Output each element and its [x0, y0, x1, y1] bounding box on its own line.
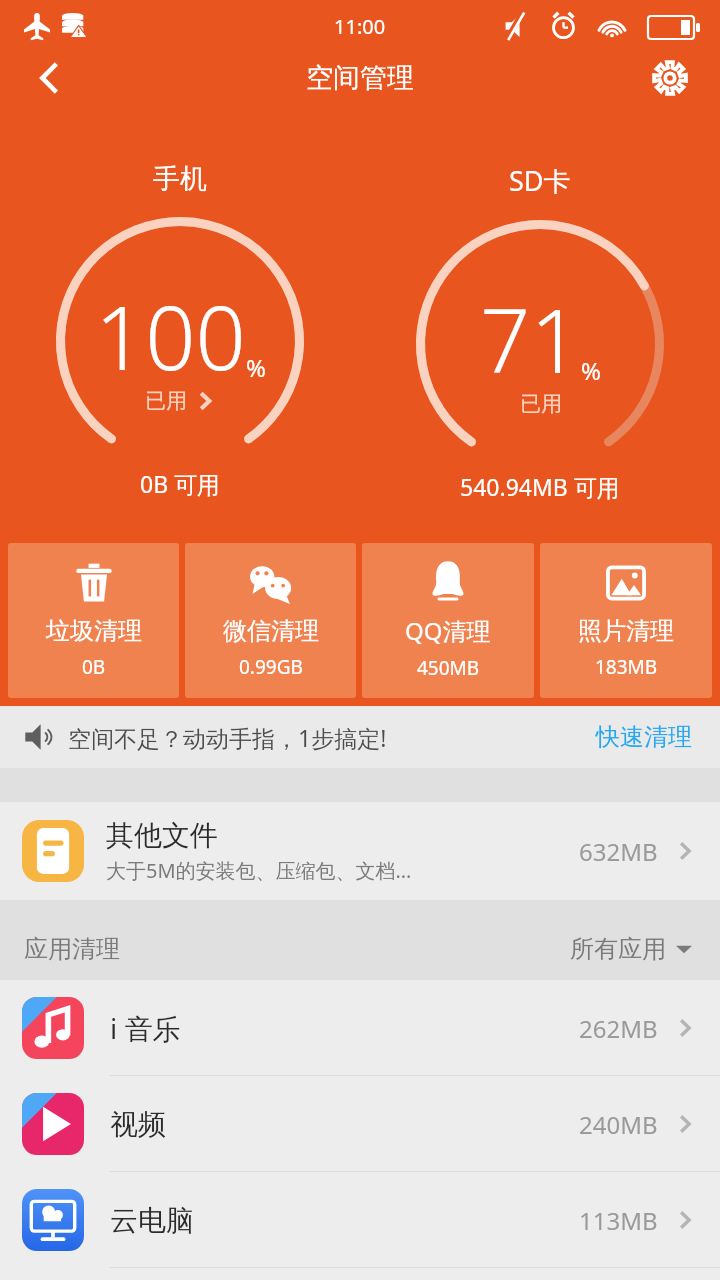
staticText: 0B: [82, 654, 106, 680]
staticText: 0B 可用: [140, 468, 221, 499]
staticText: 240MB: [579, 1108, 658, 1141]
staticText: 其他文件: [106, 818, 218, 853]
button[interactable]: 云电脑: [0, 1172, 720, 1268]
button[interactable]: QQ清理: [362, 543, 534, 698]
staticText: 已用: [145, 388, 187, 414]
staticText: 已用: [520, 391, 562, 417]
staticText: 云电脑: [110, 1203, 194, 1238]
staticText: 540.94MB 可用: [460, 471, 620, 502]
button[interactable]: 快速清理: [592, 718, 696, 756]
staticText: %: [581, 354, 601, 387]
button[interactable]: 照片清理: [540, 543, 712, 698]
staticText: 大于5M的安装包、压缩包、文档…: [106, 857, 412, 884]
staticText: 微信清理: [223, 616, 319, 646]
button[interactable]: 其他文件: [0, 802, 720, 900]
staticText: SD卡: [509, 162, 571, 199]
button[interactable]: 微信清理: [185, 543, 356, 698]
button[interactable]: 已用: [520, 391, 562, 417]
button[interactable]: Back: [12, 50, 88, 106]
staticText: 垃圾清理: [46, 616, 142, 646]
staticText: 空间不足？动动手指，1步搞定!: [68, 722, 387, 753]
staticText: 11:00: [334, 13, 386, 40]
button[interactable]: i 音乐: [0, 980, 720, 1076]
staticText: 71: [480, 279, 581, 399]
staticText: 所有应用: [570, 934, 666, 964]
button[interactable]: Settings: [632, 50, 708, 106]
staticText: 0.99GB: [239, 654, 303, 680]
button[interactable]: 所有应用: [566, 930, 696, 968]
staticText: 450MB: [417, 655, 480, 681]
staticText: i 音乐: [110, 1009, 181, 1047]
staticText: 照片清理: [578, 616, 674, 646]
staticText: QQ清理: [405, 614, 491, 647]
button[interactable]: 已用: [145, 388, 217, 414]
staticText: 手机: [153, 162, 207, 196]
button[interactable]: 垃圾清理: [8, 543, 179, 698]
staticText: 空间管理: [306, 61, 414, 95]
staticText: 632MB: [579, 835, 658, 868]
staticText: 快速清理: [596, 722, 692, 752]
staticText: 100: [95, 276, 246, 396]
staticText: 262MB: [579, 1012, 658, 1045]
staticText: 应用清理: [24, 934, 120, 964]
button[interactable]: 视频: [0, 1076, 720, 1172]
staticText: 视频: [110, 1107, 166, 1142]
staticText: 183MB: [595, 654, 658, 680]
staticText: 113MB: [579, 1204, 658, 1237]
staticText: %: [246, 351, 266, 384]
